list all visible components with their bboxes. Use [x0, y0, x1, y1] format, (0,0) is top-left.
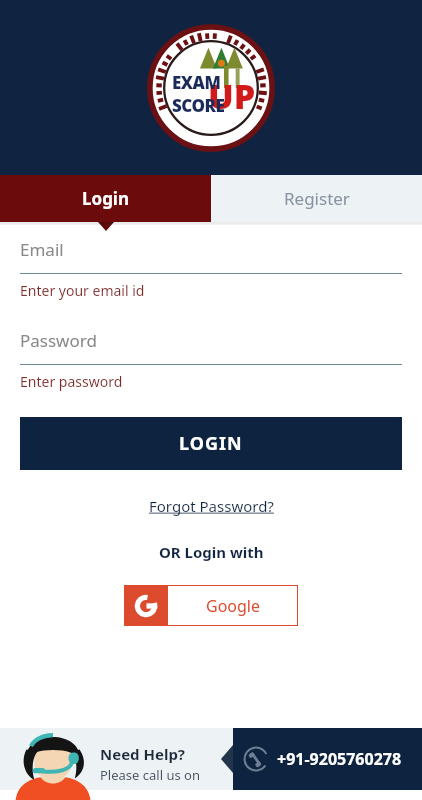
staticText: Please call us on: [100, 766, 200, 784]
staticText: Login: [82, 187, 130, 210]
staticText: Need Help?: [100, 744, 186, 764]
button[interactable]: Google: [124, 585, 298, 626]
button[interactable]: Register: [211, 175, 422, 222]
staticText: Enter your email id: [20, 281, 145, 300]
staticText: Enter password: [20, 372, 123, 391]
button[interactable]: LOGIN: [20, 417, 402, 470]
button[interactable]: Need Help?: [100, 744, 200, 784]
button[interactable]: Forgot Password?: [149, 496, 274, 516]
staticText: Email: [20, 238, 64, 261]
button[interactable]: Call +91-9205760278: [221, 728, 422, 790]
staticText: UP: [208, 73, 256, 119]
staticText: OR Login with: [159, 542, 264, 562]
staticText: Password: [20, 329, 97, 352]
staticText: Register: [284, 187, 350, 210]
staticText: LOGIN: [179, 431, 243, 456]
staticText: Forgot Password?: [149, 496, 274, 516]
button[interactable]: Login: [0, 175, 211, 222]
staticText: SCORE: [172, 94, 225, 117]
staticText: EXAM: [172, 71, 221, 94]
staticText: Google: [206, 595, 261, 617]
staticText: +91-9205760278: [277, 748, 402, 770]
